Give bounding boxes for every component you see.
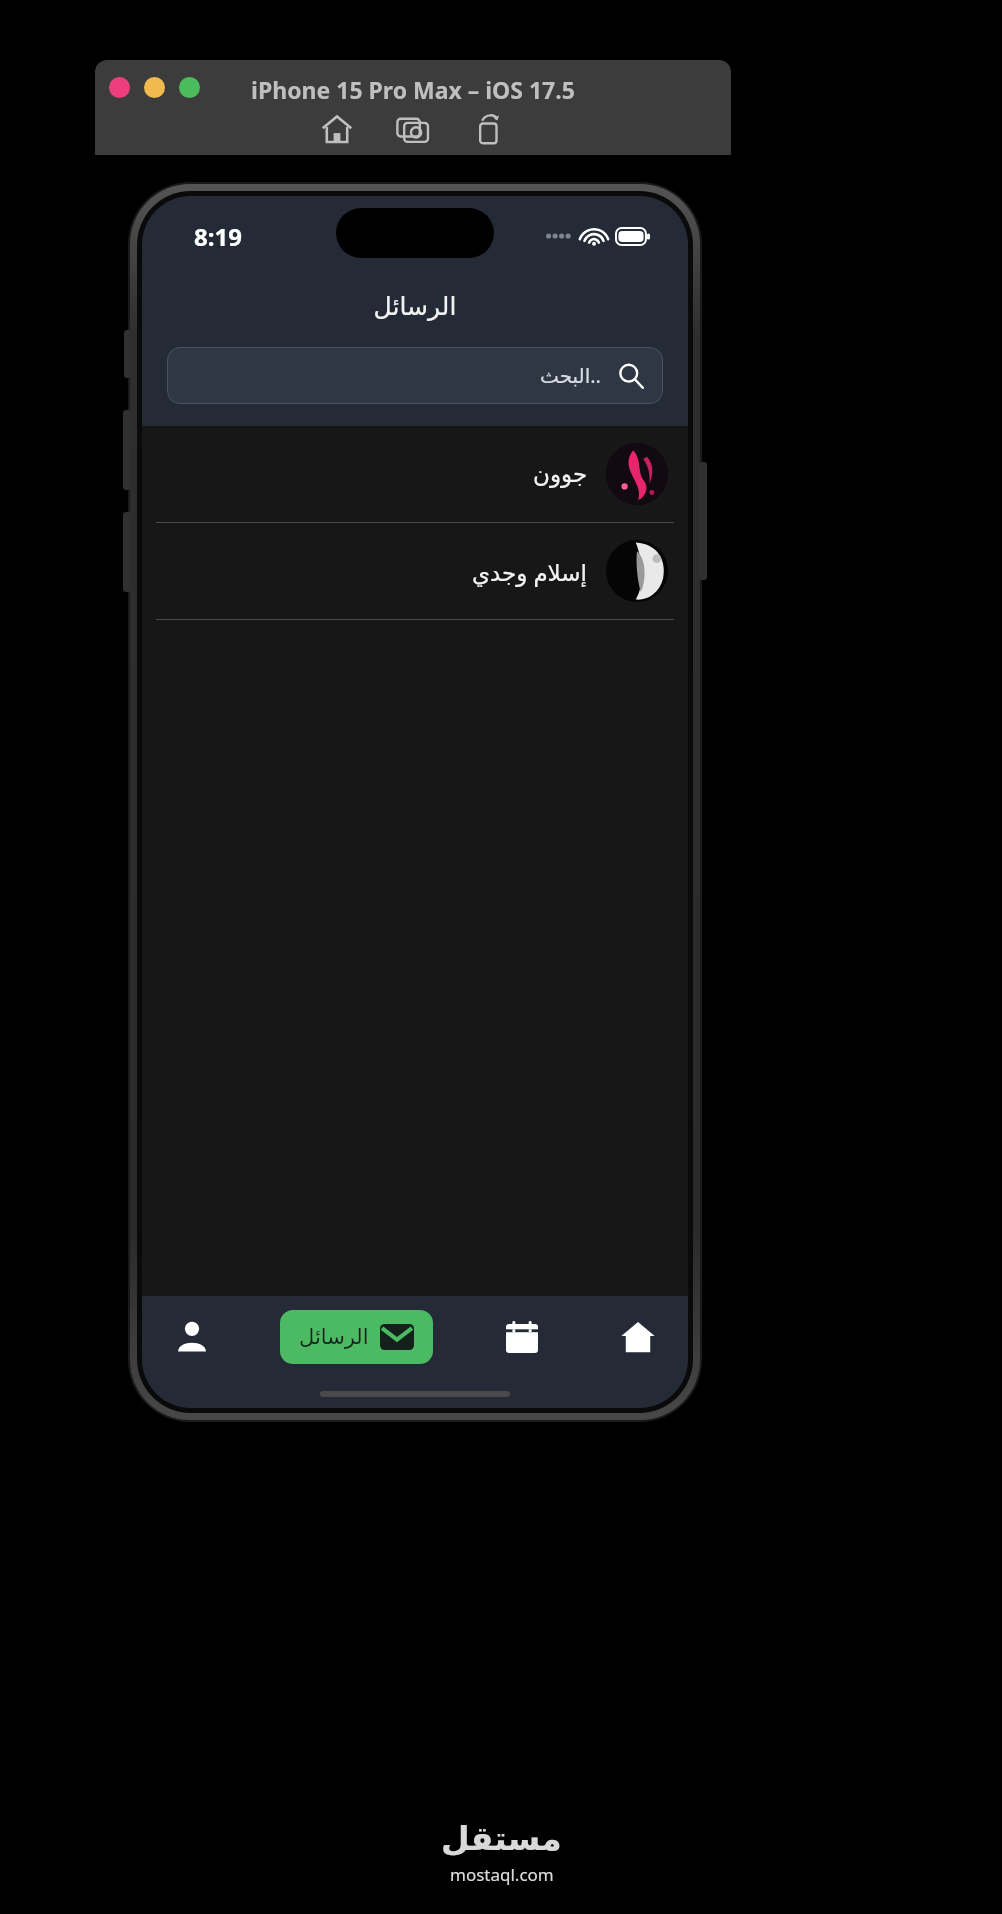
button[interactable]: الرسائل: [280, 1310, 433, 1364]
button[interactable]: Screenshot: [396, 112, 430, 146]
button[interactable]: جوون: [142, 426, 688, 522]
button[interactable]: [179, 77, 200, 98]
staticText: إسلام وجدي: [472, 556, 588, 587]
button[interactable]: [144, 77, 165, 98]
staticText: البحث..: [540, 362, 601, 389]
staticText: iPhone 15 Pro Max – iOS 17.5: [251, 74, 575, 105]
button[interactable]: Rotate: [472, 112, 506, 146]
button[interactable]: Home: [610, 1309, 666, 1365]
button[interactable]: البحث..: [167, 347, 663, 404]
staticText: جوون: [533, 461, 588, 488]
staticText: مستقل: [441, 1819, 562, 1857]
staticText: الرسائل: [142, 292, 688, 321]
button[interactable]: [109, 77, 130, 98]
button[interactable]: Calendar: [494, 1309, 550, 1365]
staticText: 8:19: [194, 220, 242, 253]
staticText: mostaql.com: [450, 1863, 554, 1886]
button[interactable]: Profile: [164, 1309, 220, 1365]
button[interactable]: Home: [320, 112, 354, 146]
staticText: الرسائل: [299, 1325, 369, 1349]
button[interactable]: إسلام وجدي: [142, 523, 688, 619]
